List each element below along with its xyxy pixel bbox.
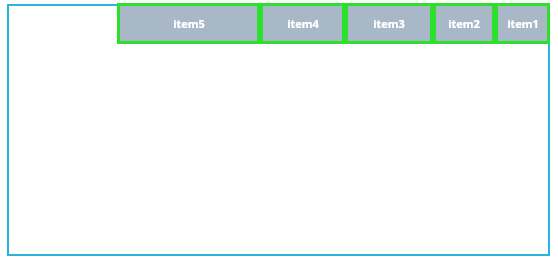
staticText: item4	[287, 16, 319, 31]
staticText: item5	[173, 16, 205, 31]
staticText: item2	[448, 16, 480, 31]
button[interactable]: item1	[495, 3, 550, 44]
staticText: item3	[373, 16, 405, 31]
staticText: item1	[507, 16, 539, 31]
button[interactable]: item2	[433, 3, 495, 44]
button[interactable]: item4	[260, 3, 345, 44]
button[interactable]: item3	[345, 3, 433, 44]
button[interactable]: item5	[117, 3, 260, 44]
